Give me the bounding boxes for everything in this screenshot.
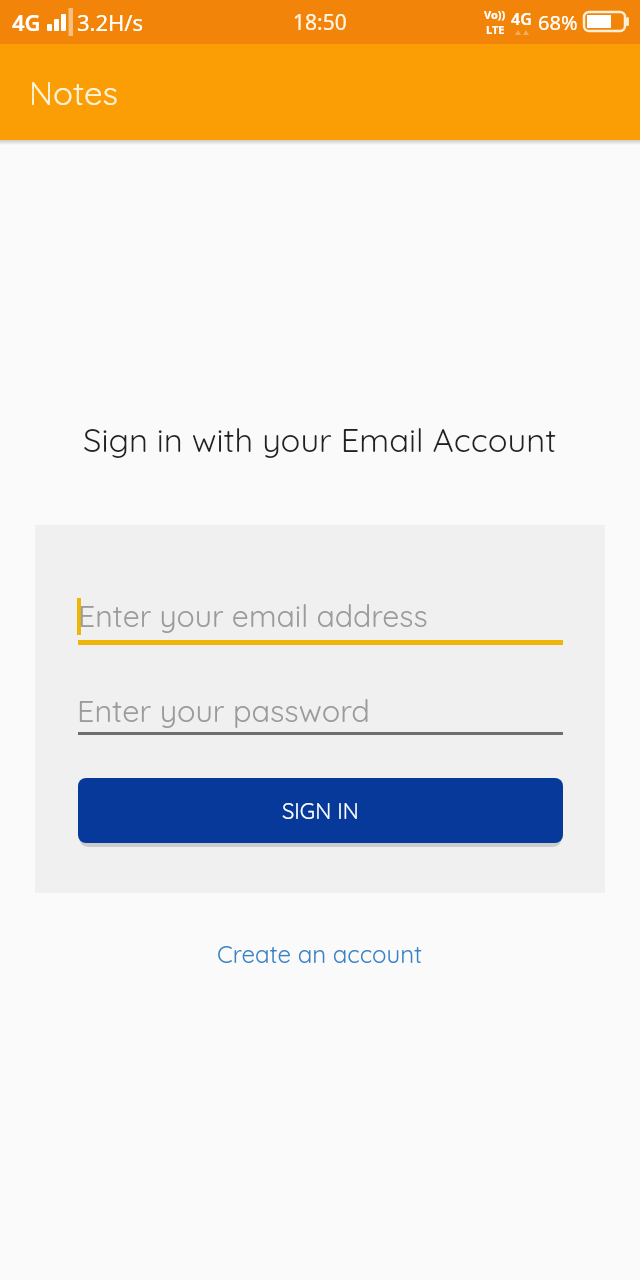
staticText: SIGN IN (282, 797, 359, 825)
staticText: Enter your email address (78, 597, 428, 635)
staticText: 4G (511, 8, 532, 30)
staticText: 3.2H/s (77, 7, 144, 37)
button[interactable]: Create an account (217, 939, 423, 969)
staticText: Notes (29, 72, 119, 113)
staticText: LTE (486, 22, 505, 37)
staticText: Enter your password (77, 691, 370, 729)
button[interactable]: Enter your password (77, 686, 527, 734)
staticText: Vo)) (484, 7, 506, 22)
staticText: Sign in with your Email Account (83, 419, 557, 460)
button[interactable]: SIGN IN (78, 778, 563, 843)
staticText: Create an account (217, 939, 423, 969)
button[interactable]: Enter your email address (78, 592, 528, 640)
staticText: 4G (12, 7, 41, 37)
staticText: 68% (538, 9, 578, 36)
staticText: 18:50 (293, 8, 347, 37)
